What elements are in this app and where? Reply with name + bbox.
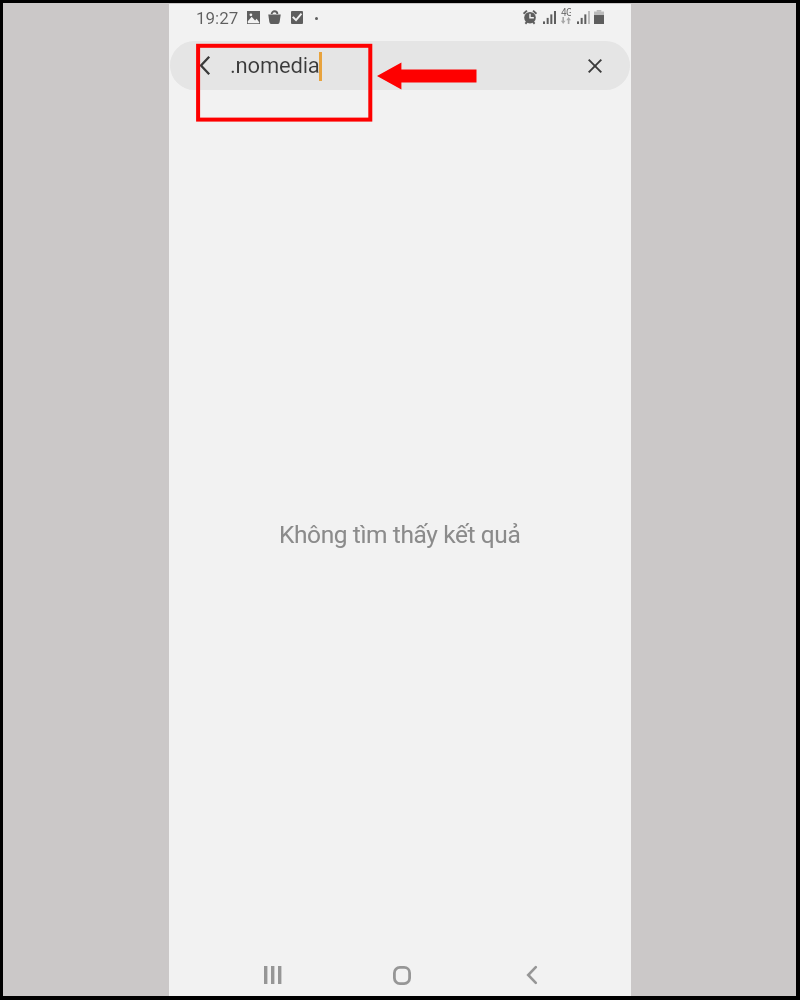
staticText: 4G — [561, 7, 571, 19]
button[interactable]: Back — [494, 949, 570, 1000]
staticText: Không tìm thấy kết quả — [279, 520, 521, 549]
button[interactable]: Recent apps — [235, 949, 311, 1000]
button[interactable]: Home — [364, 949, 440, 1000]
button[interactable]: .nomedia — [230, 41, 577, 90]
button[interactable]: Back — [170, 41, 630, 90]
staticText: 19:27 — [196, 8, 239, 28]
button[interactable]: Clear search — [576, 41, 613, 90]
staticText: .nomedia — [230, 53, 320, 79]
button[interactable]: Back — [193, 41, 217, 90]
